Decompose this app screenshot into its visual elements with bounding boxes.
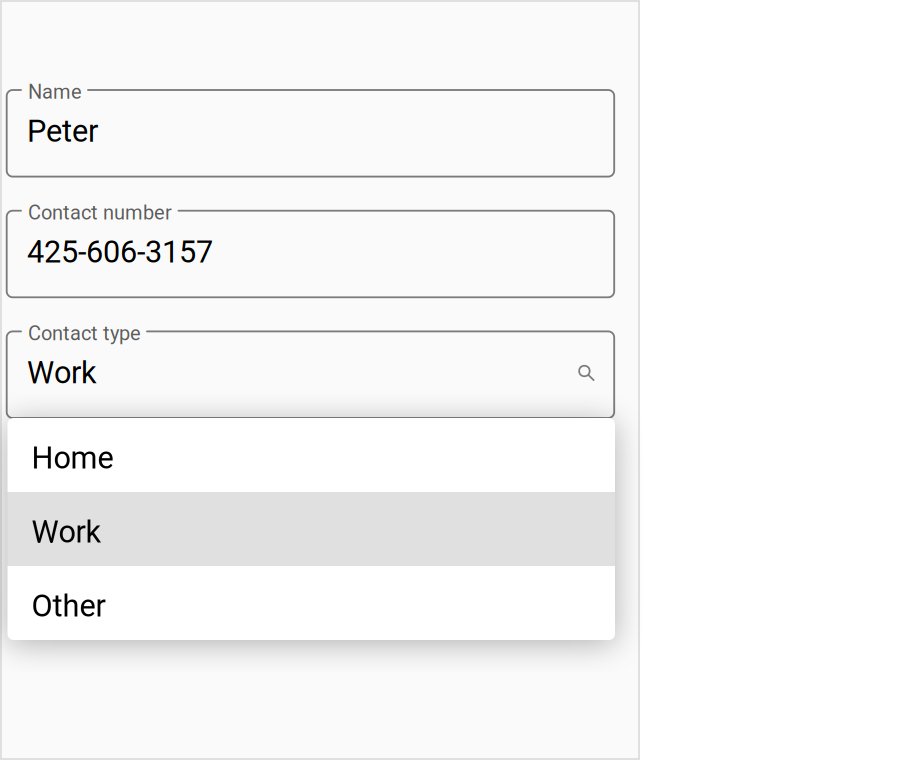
button[interactable]: Work [7, 492, 615, 566]
staticText: Contact number [28, 201, 172, 224]
button[interactable]: Home [7, 418, 615, 492]
staticText: Peter [27, 113, 98, 149]
staticText: Work [31, 514, 101, 550]
button[interactable]: 425-606-3157 [7, 211, 614, 297]
staticText: Contact type [28, 322, 141, 345]
button[interactable]: Search contact type [564, 351, 608, 395]
staticText: Other [31, 588, 105, 624]
button[interactable]: Peter [7, 90, 614, 177]
button[interactable]: Other [7, 566, 615, 640]
button[interactable]: Work [7, 331, 614, 418]
staticText: Home [31, 440, 113, 476]
staticText: 425-606-3157 [27, 234, 213, 270]
staticText: Work [27, 355, 97, 391]
staticText: Name [28, 80, 82, 104]
